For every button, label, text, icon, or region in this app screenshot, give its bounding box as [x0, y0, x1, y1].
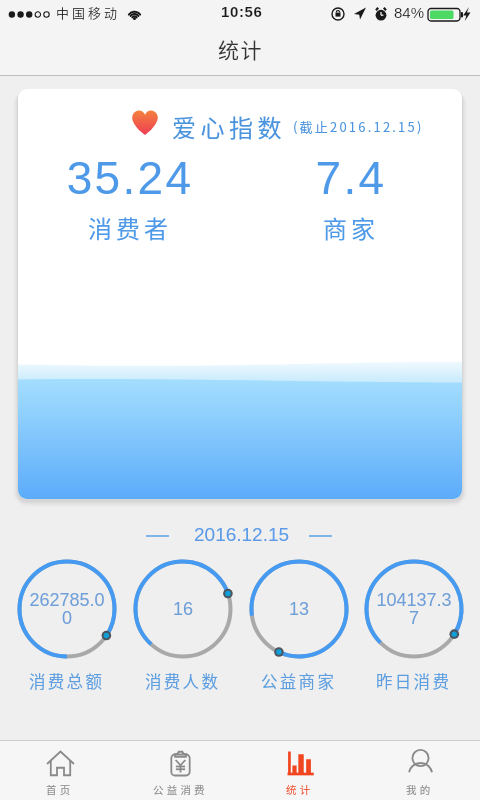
staticText: 262785.00 [29, 590, 105, 628]
other: 公益消费 [167, 751, 194, 776]
staticText: 16 [145, 599, 221, 619]
staticText: 爱心指数 [172, 109, 286, 144]
staticText: 公益商家 [261, 669, 337, 693]
button[interactable]: 首页 [0, 741, 120, 800]
button[interactable]: 13 [241, 559, 357, 693]
staticText: 我的 [406, 782, 434, 797]
staticText: 消费人数 [145, 669, 221, 693]
staticText: 消费总额 [29, 669, 105, 693]
staticText: 统计 [286, 782, 314, 797]
button[interactable]: 16 [125, 559, 241, 693]
staticText: 消费者 [40, 210, 220, 245]
staticText: 商家 [261, 210, 441, 245]
staticText: 中国移动 [56, 3, 121, 22]
button[interactable]: 262785.00 [9, 559, 125, 693]
other: 首页 [47, 751, 74, 776]
staticText: 7.4 [261, 152, 441, 203]
staticText: 统计 [218, 34, 263, 64]
staticText: 35.24 [40, 152, 220, 203]
other: 我的 [407, 751, 434, 776]
button[interactable]: 公益消费 [120, 741, 240, 800]
staticText: 104137.37 [376, 590, 452, 628]
button[interactable]: 104137.37 [357, 559, 471, 693]
button[interactable]: 我的 [360, 741, 480, 800]
staticText: 10:56 [221, 3, 263, 20]
staticText: 昨日消费 [376, 669, 452, 693]
staticText: 84% [394, 4, 425, 21]
staticText: (截止2016.12.15) [293, 117, 424, 136]
staticText: 13 [261, 599, 337, 619]
button[interactable]: 统计 [240, 741, 360, 800]
staticText: 首页 [46, 782, 74, 797]
staticText: 2016.12.15 [194, 524, 290, 545]
staticText: 公益消费 [153, 782, 208, 797]
other: 统计 [287, 751, 314, 776]
